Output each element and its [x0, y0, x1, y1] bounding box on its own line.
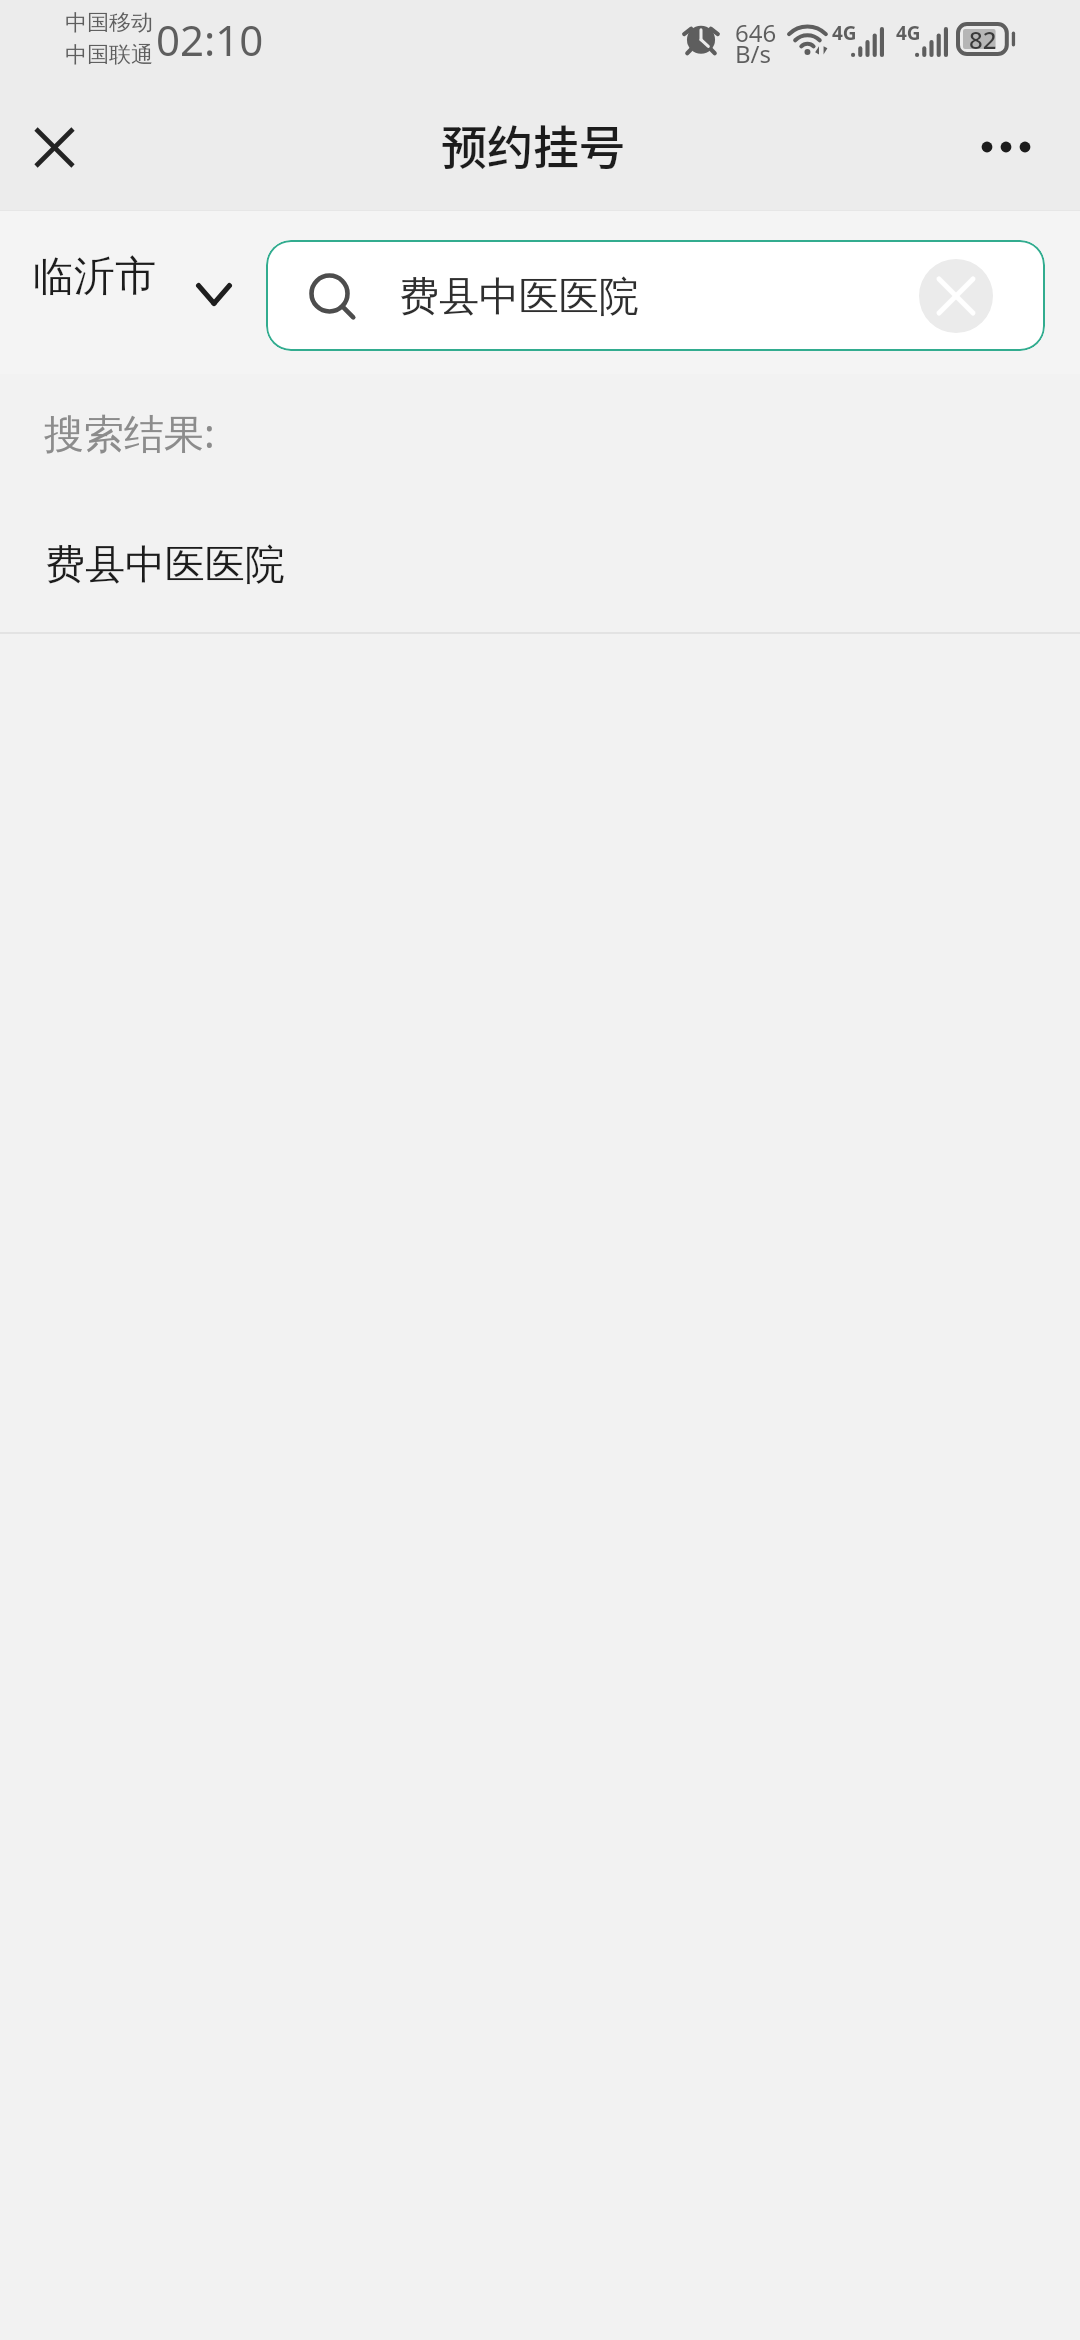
staticText: 费县中医医院: [45, 539, 285, 589]
staticText: 中国联通: [65, 41, 153, 69]
staticText: 预约挂号: [441, 111, 625, 178]
button[interactable]: 临沂市: [16, 225, 248, 357]
staticText: 搜索结果:: [44, 405, 215, 460]
staticText: B/s: [735, 37, 772, 70]
button[interactable]: Close: [14, 110, 94, 190]
staticText: 82: [969, 23, 997, 56]
staticText: 费县中医医院: [399, 271, 639, 321]
button[interactable]: 费县中医医院: [0, 493, 1080, 634]
button[interactable]: More options: [966, 110, 1046, 190]
staticText: 4G: [896, 20, 921, 46]
staticText: 646: [735, 16, 777, 49]
button[interactable]: Clear search text: [919, 259, 993, 333]
staticText: 中国移动: [65, 9, 153, 37]
staticText: 临沂市: [33, 251, 156, 303]
staticText: 02:10: [156, 11, 264, 68]
button[interactable]: 费县中医医院: [266, 240, 1045, 351]
staticText: 4G: [832, 20, 857, 46]
